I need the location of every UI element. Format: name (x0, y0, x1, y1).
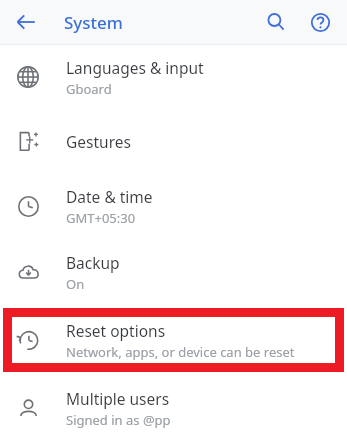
staticText: Languages & input (66, 57, 204, 78)
button[interactable]: Gestures (0, 109, 347, 173)
button[interactable]: Search (259, 5, 293, 39)
button[interactable]: Date & time (0, 173, 347, 239)
button[interactable]: Multiple users (0, 375, 347, 441)
staticText: Gestures (66, 131, 131, 152)
button[interactable]: Languages & input (0, 45, 347, 109)
staticText: On (66, 275, 85, 293)
staticText: System (64, 11, 123, 34)
button[interactable]: Back (8, 4, 44, 40)
staticText: Date & time (66, 186, 153, 207)
staticText: Network, apps, or device can be reset (66, 343, 295, 361)
staticText: Gboard (66, 80, 112, 98)
staticText: Signed in as @pp (66, 411, 171, 429)
staticText: GMT+05:30 (66, 209, 136, 227)
staticText: Reset options (66, 320, 166, 341)
staticText: Multiple users (66, 388, 170, 409)
staticText: Backup (66, 252, 120, 273)
button[interactable]: Help (303, 5, 337, 39)
button[interactable]: Backup (0, 239, 347, 305)
button[interactable]: Reset options (0, 305, 347, 375)
